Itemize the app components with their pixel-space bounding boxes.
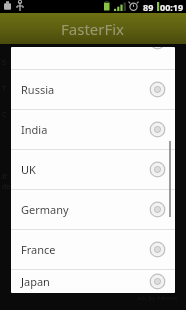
staticText: T [2, 84, 6, 94]
button[interactable]: Germany [11, 190, 175, 229]
staticText: Russia [21, 82, 55, 97]
button[interactable]: UK [11, 150, 175, 189]
staticText: Japan [21, 274, 50, 289]
button[interactable]: India [11, 110, 175, 149]
staticText: C [2, 110, 7, 120]
staticText: S [2, 58, 6, 68]
button[interactable]: Russia [11, 70, 175, 109]
button[interactable]: Select [149, 161, 166, 178]
button[interactable]: China [11, 47, 175, 69]
button[interactable]: Select [149, 81, 166, 98]
staticText: Germany [21, 202, 69, 217]
button[interactable]: Select [149, 47, 166, 50]
staticText: de [2, 182, 11, 192]
staticText: FasterFix [61, 19, 125, 39]
button[interactable]: France [11, 230, 175, 269]
button[interactable]: Select [149, 241, 166, 258]
button[interactable]: Japan [11, 270, 175, 293]
staticText: 00:19 [160, 1, 184, 13]
button[interactable]: Select [149, 273, 166, 290]
staticText: UK [21, 162, 36, 177]
button[interactable]: Select [149, 201, 166, 218]
staticText: India [21, 122, 48, 137]
staticText: France [21, 242, 56, 257]
staticText: If [2, 172, 7, 182]
staticText: 89 [143, 1, 154, 13]
button[interactable]: Select [149, 121, 166, 138]
